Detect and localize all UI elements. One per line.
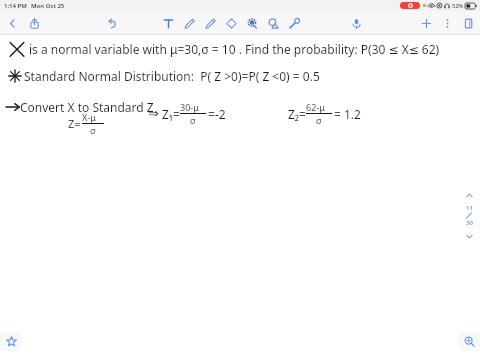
staticText: Z₁= [162,106,180,122]
button[interactable]: Text tool [160,15,176,31]
staticText: σ [90,124,96,136]
button[interactable]: Favorite [0,331,22,351]
button[interactable]: Pen [181,15,197,31]
staticText: 30-μ [180,101,206,113]
staticText: =-2 [208,106,226,122]
button[interactable]: Back [4,15,20,31]
staticText: 52% [452,2,463,9]
staticText: Z= [68,116,81,131]
button[interactable]: Highlighter [202,15,218,31]
staticText: = 1.2 [334,106,361,122]
staticText: 30 [466,219,473,227]
staticText: ⇒ [148,106,159,121]
button[interactable]: Zoom in [458,331,480,351]
staticText: 62-μ [306,101,332,113]
button[interactable]: Lasso [244,15,260,31]
button[interactable]: Shape [265,15,281,31]
button[interactable]: Previous page [462,188,476,202]
button[interactable]: Pages [460,15,476,31]
button[interactable]: Next page [462,229,476,243]
staticText: Mon Oct 25 [31,2,65,10]
staticText: Z₂= [288,106,306,122]
button[interactable]: Add [418,15,434,31]
button[interactable]: Share [26,15,42,31]
staticText: σ [316,114,322,126]
button[interactable]: Sticker [286,15,302,31]
staticText: Standard Normal Distribution: P( Z >0)=P… [24,68,320,84]
button[interactable]: More options [439,15,455,31]
staticText: 1:14 PM [4,2,27,10]
button[interactable]: Eraser [223,15,239,31]
button[interactable]: Undo [104,15,120,31]
staticText: Convert X to Standard Z [20,99,154,115]
button[interactable]: Record audio [348,15,364,31]
staticText: X-μ [82,111,104,123]
staticText: σ [190,114,196,126]
staticText: is a normal variable with μ=30,σ = 10 . … [29,41,440,57]
staticText: 11 [466,204,473,212]
